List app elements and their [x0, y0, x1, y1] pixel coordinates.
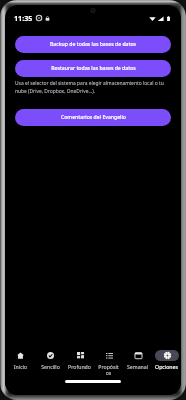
button[interactable]: Comentarios del Evangelio [15, 109, 171, 126]
staticText: Profundo [68, 363, 91, 370]
staticText: Restaurar todas las bases de datos [51, 65, 136, 72]
staticText: Sencillo [39, 363, 62, 370]
staticText: Inicio [9, 363, 32, 370]
button[interactable]: Backup de todas las bases de datos [15, 36, 171, 53]
staticText: Propósitos [97, 363, 120, 377]
staticText: Opciones [155, 363, 178, 370]
staticText: Backup de todas las bases de datos [50, 41, 136, 48]
button[interactable]: Opciones [152, 350, 181, 370]
button[interactable]: Propósitos [94, 350, 123, 377]
button[interactable]: Restaurar todas las bases de datos [15, 60, 171, 77]
button[interactable]: Profundo [65, 350, 94, 370]
button[interactable]: Inicio [5, 350, 35, 370]
staticText: Semanal [126, 363, 149, 370]
button[interactable]: Semanal [123, 350, 152, 370]
staticText: 11:35 [14, 13, 33, 23]
staticText: Usa el selector del sistema para elegir … [15, 80, 171, 95]
staticText: Comentarios del Evangelio [61, 114, 126, 121]
button[interactable]: Sencillo [35, 350, 65, 370]
